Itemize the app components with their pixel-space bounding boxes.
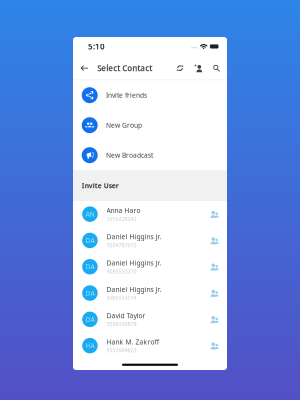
button[interactable]: HA [73, 332, 227, 359]
staticText: DA [85, 262, 94, 271]
staticText: Daniel Higgins Jr. [107, 232, 162, 241]
staticText: 5:10 [88, 41, 105, 52]
button[interactable]: Invite friends [73, 80, 227, 110]
staticText: David Taylor [107, 311, 146, 320]
button[interactable]: DA [73, 227, 227, 254]
button[interactable]: Back [77, 57, 92, 80]
staticText: 5558106879 [107, 320, 137, 327]
staticText: AN [85, 210, 94, 219]
staticText: Invite friends [106, 91, 147, 100]
button[interactable]: DA [73, 254, 227, 280]
button[interactable]: Refresh [171, 57, 189, 80]
button[interactable]: Add contact [189, 57, 208, 80]
button[interactable]: DA [73, 306, 227, 332]
button[interactable]: Search [208, 57, 225, 80]
button[interactable]: New Broadcast [73, 140, 227, 170]
staticText: Daniel Higgins Jr. [107, 259, 162, 267]
staticText: New Broadcast [106, 151, 153, 160]
staticText: 5555228243 [107, 215, 137, 222]
staticText: DA [85, 315, 94, 324]
staticText: DA [85, 289, 94, 297]
button[interactable]: DA [73, 280, 227, 306]
staticText: 5557664823 [107, 347, 137, 354]
staticText: 4085553514 [107, 294, 137, 301]
staticText: DA [85, 236, 94, 245]
staticText: Anna Haro [107, 206, 141, 215]
staticText: 5554787672 [107, 241, 137, 249]
staticText: New Group [106, 121, 142, 130]
staticText: HA [85, 341, 94, 350]
staticText: 4085555270 [107, 268, 137, 275]
staticText: Invite User [82, 181, 119, 190]
staticText: Select Contact [97, 63, 152, 73]
staticText: Daniel Higgins Jr. [107, 285, 162, 294]
staticText: Hank M. Zakroff [107, 337, 160, 346]
button[interactable]: New Group [73, 110, 227, 140]
button[interactable]: AN [73, 201, 227, 227]
